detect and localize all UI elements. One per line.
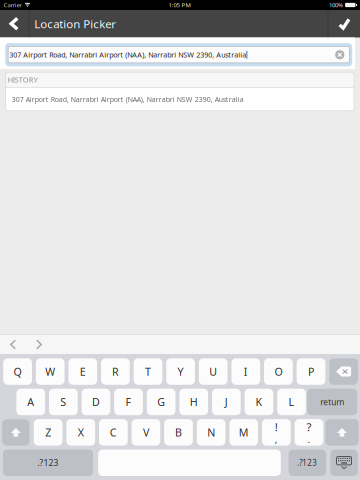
staticText: Q [14, 364, 22, 379]
staticText: U [209, 364, 217, 379]
staticText: K [255, 395, 262, 409]
button[interactable]: Shift [2, 419, 29, 446]
button[interactable]: D [82, 389, 110, 415]
button[interactable]: J [212, 389, 241, 415]
button[interactable]: Numbers [289, 449, 326, 476]
staticText: V [143, 425, 149, 440]
button[interactable]: C [99, 419, 128, 446]
button[interactable]: Numbers [3, 449, 93, 476]
staticText: B [175, 425, 182, 440]
button[interactable]: Back [0, 10, 28, 37]
button[interactable]: V [132, 419, 160, 446]
button[interactable]: F [114, 389, 143, 415]
button[interactable]: W [36, 358, 65, 385]
staticText: 307 Airport Road, Narrabri Airport (NAA)… [12, 95, 244, 104]
staticText: , [275, 433, 278, 446]
staticText: A [27, 395, 34, 409]
button[interactable]: Previous field [0, 335, 26, 354]
button[interactable]: R [101, 358, 130, 385]
button[interactable]: Delete [329, 358, 358, 385]
staticText: I [244, 364, 248, 379]
staticText: D [92, 395, 100, 409]
button[interactable]: T [134, 358, 162, 385]
staticText: 307 Airport Road, Narrabri Airport (NAA)… [9, 50, 246, 60]
button[interactable]: S [49, 389, 78, 415]
staticText: Carrier [3, 1, 21, 9]
button[interactable]: O [264, 358, 293, 385]
staticText: W [45, 364, 55, 379]
staticText: ? [306, 419, 311, 435]
button[interactable]: A [16, 389, 45, 415]
button[interactable]: Shift [325, 419, 359, 446]
staticText: 100% [329, 1, 343, 9]
button[interactable]: E [68, 358, 97, 385]
button[interactable]: B [164, 419, 193, 446]
button[interactable]: L [277, 389, 306, 415]
staticText: T [145, 364, 151, 379]
staticText: X [78, 425, 84, 440]
staticText: .?123 [297, 457, 317, 468]
staticText: N [207, 425, 215, 440]
staticText: P [308, 364, 314, 379]
staticText: S [60, 395, 66, 409]
button[interactable]: Done [328, 10, 360, 37]
staticText: J [225, 395, 228, 409]
staticText: . [307, 433, 310, 446]
staticText: G [157, 395, 165, 409]
staticText: Y [178, 364, 184, 379]
staticText: ! [275, 419, 278, 435]
button[interactable]: P [297, 358, 325, 385]
button[interactable]: Y [166, 358, 195, 385]
staticText: R [112, 364, 119, 379]
button[interactable]: H [179, 389, 208, 415]
staticText: Z [45, 425, 51, 440]
staticText: E [80, 364, 86, 379]
button[interactable]: Z [34, 419, 62, 446]
button[interactable]: X [66, 419, 95, 446]
button[interactable]: I [231, 358, 260, 385]
staticText: Location Picker [34, 16, 116, 31]
staticText: H [190, 395, 198, 409]
button[interactable]: ! [262, 419, 291, 446]
button[interactable]: ? [295, 419, 323, 446]
staticText: O [274, 364, 282, 379]
button[interactable]: U [199, 358, 228, 385]
button[interactable]: Next field [26, 335, 52, 354]
button[interactable]: G [147, 389, 175, 415]
button[interactable]: 307 Airport Road, Narrabri Airport (NAA)… [5, 88, 354, 111]
button[interactable]: Q [3, 358, 32, 385]
staticText: HISTORY [8, 75, 38, 85]
staticText: M [239, 425, 249, 440]
staticText: C [110, 425, 117, 440]
staticText: L [289, 395, 295, 409]
staticText: 1:05 PM [169, 1, 191, 9]
staticText: return [320, 396, 344, 408]
staticText: F [126, 395, 132, 409]
staticText: .?123 [37, 457, 58, 468]
button[interactable]: K [245, 389, 273, 415]
button[interactable]: N [197, 419, 225, 446]
button[interactable]: return [307, 389, 357, 415]
button[interactable]: M [229, 419, 258, 446]
button[interactable]: Hide keyboard [330, 449, 358, 476]
